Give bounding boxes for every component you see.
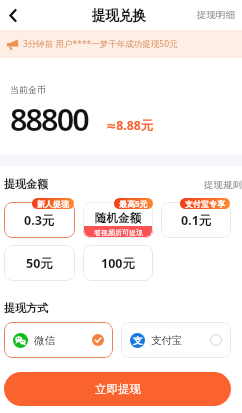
staticText: 支付宝专享 (185, 199, 225, 209)
staticText: 50元 (26, 255, 53, 272)
button[interactable]: 提现规则 (204, 177, 242, 191)
staticText: 立即提现 (95, 382, 141, 396)
staticText: 100元 (101, 255, 135, 272)
button[interactable]: 0.1元 (161, 202, 231, 238)
staticText: 随机金额 (95, 211, 141, 225)
staticText: 88800 (10, 98, 88, 140)
button[interactable]: 支 (121, 322, 231, 358)
button[interactable]: 提现明细 (189, 3, 242, 27)
button[interactable]: 100元 (83, 245, 153, 281)
staticText: 支付宝 (151, 334, 183, 347)
button[interactable]: 微信 (4, 322, 113, 358)
staticText: 0.3元 (24, 212, 55, 229)
staticText: 最高5元 (119, 198, 148, 209)
button[interactable]: 0.3元 (4, 202, 75, 238)
button[interactable]: Back (0, 2, 26, 28)
button[interactable]: 立即提现 (4, 372, 231, 406)
staticText: 当前金币 (10, 84, 46, 95)
staticText: ≈8.88元 (106, 117, 154, 134)
button[interactable]: 50元 (4, 245, 75, 281)
staticText: 支 (133, 335, 143, 347)
staticText: 提现金额 (4, 177, 48, 191)
staticText: 新人提现 (37, 199, 69, 209)
staticText: 提现规则 (204, 179, 242, 189)
staticText: 提现兑换 (92, 7, 146, 24)
staticText: 微信 (34, 334, 55, 347)
staticText: 提现方式 (4, 301, 48, 315)
button[interactable]: 3分钟前 用户****一梦千年成功提现50元 (0, 30, 242, 58)
staticText: 看视频后可提现 (94, 228, 143, 237)
staticText: 0.1元 (181, 212, 212, 229)
staticText: 提现明细 (197, 9, 235, 21)
staticText: 3分钟前 用户****一梦千年成功提现50元 (23, 38, 178, 50)
button[interactable]: 随机金额 (83, 202, 153, 238)
